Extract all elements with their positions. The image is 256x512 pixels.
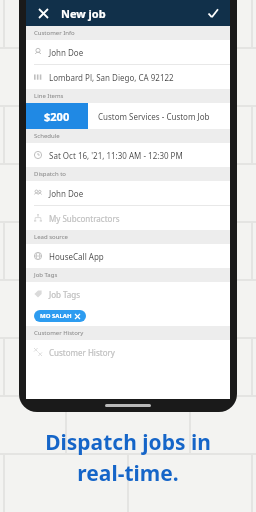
- staticText: Customer History: [34, 329, 84, 337]
- staticText: MO SALAH: [40, 312, 72, 320]
- button[interactable]: $200: [26, 103, 230, 129]
- staticText: Job Tags: [34, 271, 58, 279]
- staticText: Line Items: [34, 92, 64, 100]
- button[interactable]: Save: [204, 4, 222, 22]
- staticText: Custom Services - Custom Job: [98, 111, 210, 122]
- staticText: John Doe: [49, 47, 84, 58]
- staticText: Lead source: [34, 233, 68, 241]
- staticText: My Subcontractors: [49, 213, 120, 224]
- staticText: Dispatch to: [34, 170, 66, 178]
- button[interactable]: Lombard Pl, San Diego, CA 92122: [26, 65, 230, 89]
- staticText: Customer History: [49, 347, 115, 358]
- staticText: real-time.: [77, 459, 179, 488]
- button[interactable]: My Subcontractors: [26, 206, 230, 230]
- button[interactable]: Sat Oct 16, '21, 11:30 AM - 12:30 PM: [26, 143, 230, 167]
- staticText: Sat Oct 16, '21, 11:30 AM - 12:30 PM: [49, 150, 183, 161]
- button[interactable]: HouseCall App: [26, 244, 230, 268]
- staticText: John Doe: [49, 188, 84, 199]
- staticText: Dispatch jobs in: [45, 428, 211, 457]
- button[interactable]: MO SALAH: [34, 310, 86, 322]
- button[interactable]: Customer History: [26, 340, 230, 364]
- staticText: $200: [44, 109, 70, 124]
- staticText: Customer Info: [34, 29, 75, 37]
- button[interactable]: Close: [34, 4, 52, 22]
- button[interactable]: Job Tags: [26, 282, 230, 306]
- staticText: Lombard Pl, San Diego, CA 92122: [49, 72, 174, 83]
- staticText: Schedule: [34, 132, 60, 140]
- staticText: HouseCall App: [49, 251, 104, 262]
- staticText: New job: [61, 6, 106, 21]
- staticText: Job Tags: [49, 289, 81, 300]
- button[interactable]: John Doe: [26, 181, 230, 205]
- button[interactable]: John Doe: [26, 40, 230, 64]
